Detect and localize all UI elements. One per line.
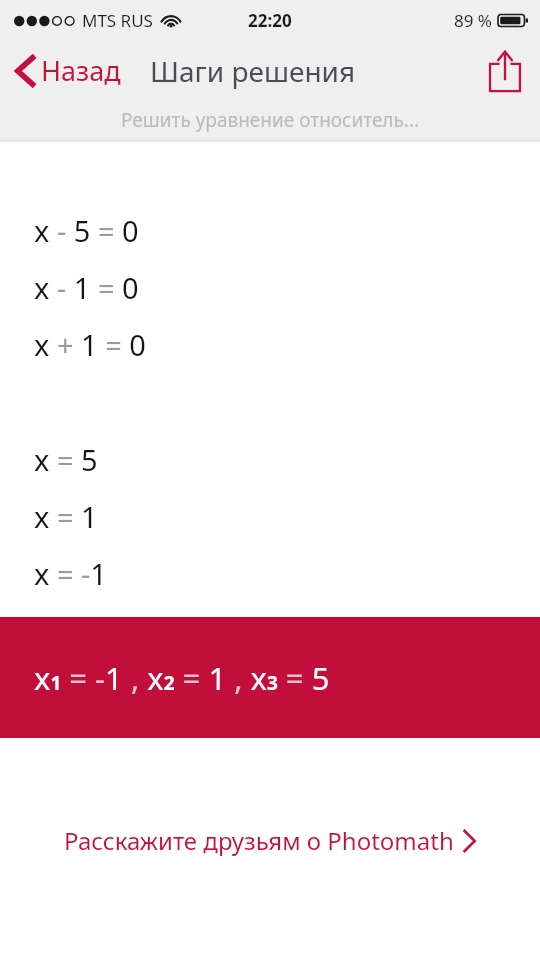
staticText: Шаги решения <box>150 52 356 90</box>
staticText: Решить уравнение относитель... <box>121 107 420 133</box>
staticText: Назад <box>41 52 121 89</box>
staticText: x = 1 <box>34 497 540 536</box>
staticText: 22:20 <box>248 9 292 32</box>
staticText: Расскажите друзьям о Photomath <box>64 824 454 857</box>
staticText: MTS RUS <box>82 9 153 32</box>
staticText: x1 = -1 , x2 = 1 , x3 = 5 <box>34 657 330 699</box>
button[interactable]: Поделиться <box>484 46 526 96</box>
staticText: x = 5 <box>34 440 540 479</box>
button[interactable]: x1 = -1 , x2 = 1 , x3 = 5 <box>0 617 540 738</box>
staticText: x = -1 <box>34 554 540 593</box>
staticText: x - 5 = 0 <box>34 211 540 250</box>
staticText: 89 % <box>454 9 492 32</box>
staticText: x + 1 = 0 <box>34 325 540 364</box>
staticText: x - 1 = 0 <box>34 268 540 307</box>
button[interactable]: Расскажите друзьям о Photomath <box>52 816 488 865</box>
button[interactable]: Назад <box>10 48 127 93</box>
